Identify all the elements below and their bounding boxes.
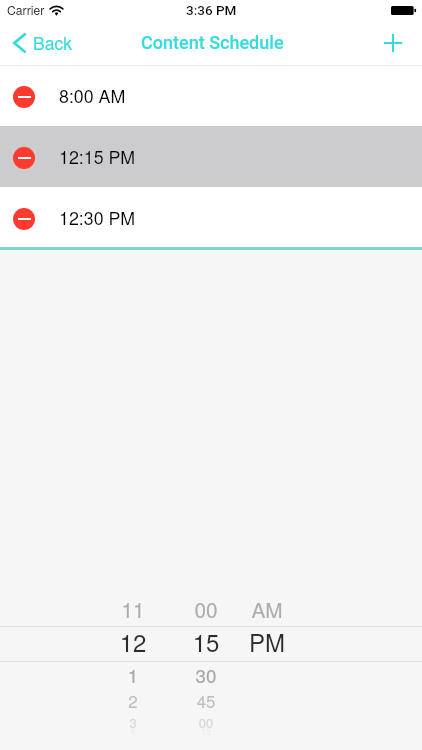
staticText: 3:36 PM bbox=[186, 2, 237, 18]
button[interactable]: Remove 12:15 PM bbox=[13, 147, 35, 169]
staticText: PM bbox=[222, 624, 312, 658]
button[interactable]: 30 bbox=[161, 654, 251, 694]
button[interactable]: 15 bbox=[161, 621, 251, 661]
staticText: 15 bbox=[161, 624, 251, 658]
button[interactable]: PM bbox=[222, 621, 312, 661]
staticText: 1 bbox=[88, 661, 178, 688]
button[interactable]: 00 bbox=[161, 702, 251, 742]
button[interactable]: 12 bbox=[88, 621, 178, 661]
staticText: Content Schedule bbox=[141, 32, 284, 53]
staticText: 12 bbox=[88, 624, 178, 658]
staticText: Back bbox=[33, 30, 72, 55]
button[interactable]: Back bbox=[0, 27, 84, 62]
staticText: AM bbox=[222, 594, 312, 624]
button[interactable]: 00 bbox=[161, 589, 251, 629]
staticText: 00 bbox=[161, 594, 251, 624]
button[interactable]: Remove 8:00 AM bbox=[0, 66, 422, 126]
button[interactable]: 1 bbox=[88, 654, 178, 694]
staticText: 12:30 PM bbox=[59, 205, 136, 230]
staticText: 15 bbox=[161, 724, 251, 738]
button[interactable]: AM bbox=[222, 589, 312, 629]
button[interactable]: 3 bbox=[88, 702, 178, 742]
button[interactable]: 2 bbox=[88, 681, 178, 721]
staticText: 00 bbox=[161, 713, 251, 732]
staticText: 45 bbox=[161, 689, 251, 713]
staticText: 12:15 PM bbox=[59, 144, 136, 169]
staticText: 11 bbox=[88, 594, 178, 624]
button[interactable]: 15 bbox=[161, 711, 251, 750]
staticText: 8:00 AM bbox=[59, 83, 126, 108]
button[interactable]: Remove 12:30 PM bbox=[13, 208, 35, 230]
button[interactable]: 45 bbox=[161, 681, 251, 721]
button[interactable]: Add schedule bbox=[370, 24, 422, 65]
button[interactable]: Remove 12:30 PM bbox=[0, 187, 422, 247]
staticText: 3 bbox=[88, 713, 178, 732]
button[interactable]: Remove 12:15 PM bbox=[0, 126, 422, 187]
button[interactable]: 11 bbox=[88, 589, 178, 629]
staticText: 30 bbox=[161, 661, 251, 688]
button[interactable]: Remove 8:00 AM bbox=[13, 86, 35, 108]
staticText: Carrier bbox=[7, 1, 45, 18]
staticText: 2 bbox=[88, 689, 178, 713]
